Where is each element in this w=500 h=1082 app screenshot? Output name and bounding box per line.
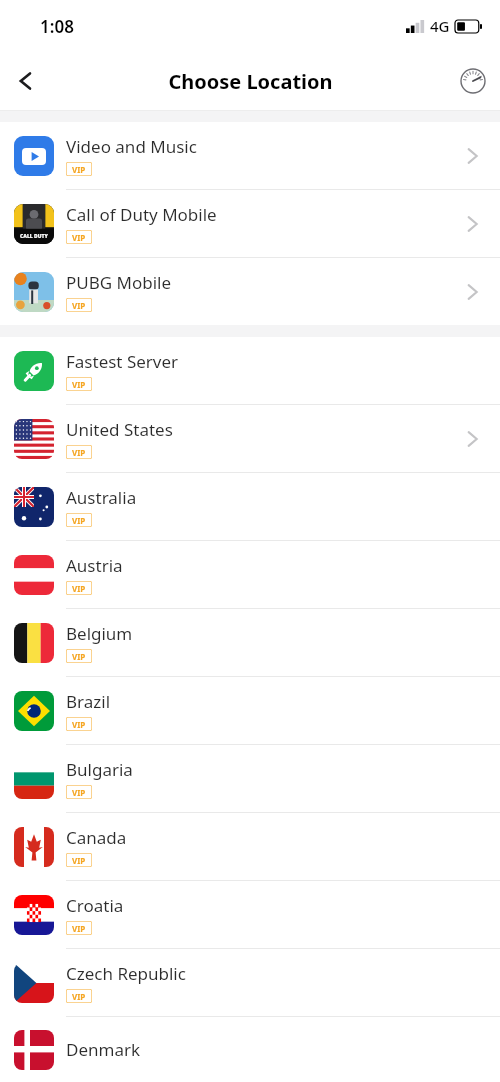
staticText: Call of Duty Mobile <box>66 203 217 226</box>
button[interactable]: Czech Republic <box>0 949 500 1016</box>
button[interactable]: Austria <box>0 541 500 608</box>
staticText: Australia <box>66 486 137 509</box>
staticText: Canada <box>66 826 127 849</box>
staticText: VIP <box>72 583 86 594</box>
staticText: Brazil <box>66 690 111 713</box>
staticText: Austria <box>66 554 123 577</box>
button[interactable]: Back <box>0 52 52 110</box>
staticText: Video and Music <box>66 135 197 158</box>
staticText: VIP <box>72 787 86 798</box>
staticText: Croatia <box>66 894 124 917</box>
staticText: PUBG Mobile <box>66 271 172 294</box>
staticText: VIP <box>72 651 86 662</box>
button[interactable]: Bulgaria <box>0 745 500 812</box>
staticText: Bulgaria <box>66 758 133 781</box>
button[interactable]: Video and Music <box>0 122 500 189</box>
staticText: 4G <box>430 16 450 36</box>
button[interactable]: Croatia <box>0 881 500 948</box>
staticText: VIP <box>72 447 86 458</box>
staticText: VIP <box>72 991 86 1002</box>
button[interactable]: CALL DUTY <box>0 190 500 257</box>
staticText: Belgium <box>66 622 133 645</box>
staticText: Choose Location <box>168 68 333 95</box>
button[interactable]: PUBG Mobile <box>0 258 500 325</box>
staticText: VIP <box>72 855 86 866</box>
staticText: Denmark <box>66 1038 141 1061</box>
button[interactable]: Fastest Server <box>0 337 500 404</box>
staticText: VIP <box>72 719 86 730</box>
staticText: VIP <box>72 232 86 243</box>
button[interactable]: Speed test <box>446 52 500 110</box>
staticText: VIP <box>72 379 86 390</box>
button[interactable]: Canada <box>0 813 500 880</box>
staticText: 1:08 <box>40 15 74 38</box>
button[interactable]: Brazil <box>0 677 500 744</box>
staticText: Czech Republic <box>66 962 186 985</box>
staticText: VIP <box>72 164 86 175</box>
staticText: VIP <box>72 515 86 526</box>
staticText: Fastest Server <box>66 350 179 373</box>
button[interactable]: United States <box>0 405 500 472</box>
staticText: VIP <box>72 923 86 934</box>
staticText: VIP <box>72 300 86 311</box>
staticText: CALL DUTY <box>20 233 48 240</box>
staticText: United States <box>66 418 173 441</box>
button[interactable]: Australia <box>0 473 500 540</box>
button[interactable]: Belgium <box>0 609 500 676</box>
button[interactable]: Denmark <box>0 1017 500 1082</box>
